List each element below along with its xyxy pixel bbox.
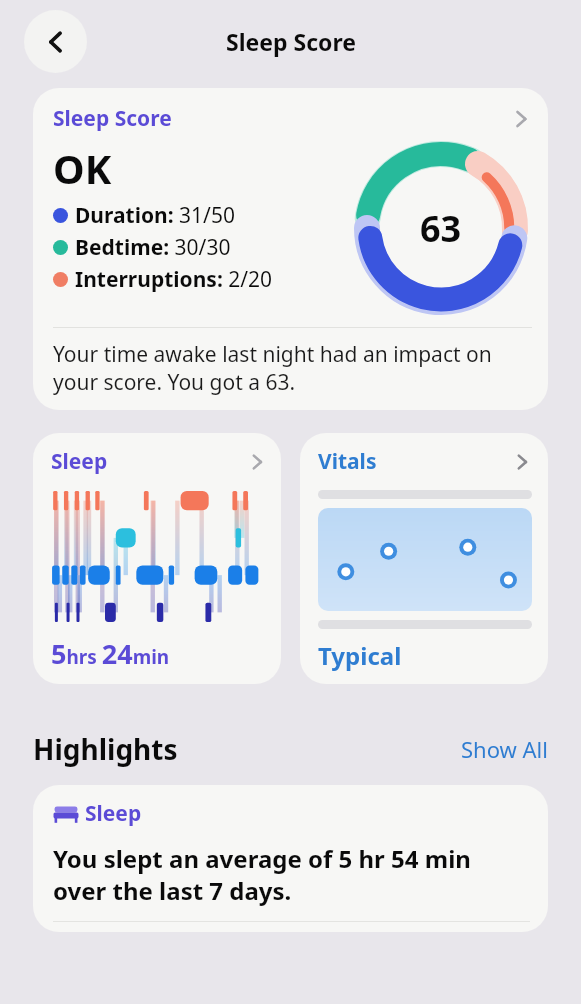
staticText: You slept an average of 5 hr 54 min over… xyxy=(53,842,530,907)
staticText: 5hrs 24min xyxy=(51,635,170,672)
staticText: Typical xyxy=(318,639,402,672)
staticText: Duration: 31/50 xyxy=(75,201,235,230)
button[interactable]: Vitals xyxy=(300,433,548,684)
button[interactable]: Back xyxy=(24,10,87,73)
staticText: OK xyxy=(53,141,112,195)
staticText: Show All xyxy=(461,734,548,764)
staticText: 63 xyxy=(420,204,462,253)
staticText: Sleep xyxy=(85,799,142,828)
staticText: Highlights xyxy=(33,730,178,768)
button[interactable]: Sleep xyxy=(33,785,548,932)
staticText: Sleep Score xyxy=(226,26,356,57)
staticText: Interruptions: 2/20 xyxy=(75,265,273,294)
staticText: Your time awake last night had an impact… xyxy=(53,340,532,396)
staticText: Sleep xyxy=(51,447,108,476)
button[interactable]: Show All xyxy=(461,734,548,764)
staticText: Vitals xyxy=(318,447,377,476)
button[interactable]: Sleep xyxy=(33,433,281,684)
staticText: Sleep Score xyxy=(53,104,172,133)
button[interactable]: Sleep Score xyxy=(33,88,548,410)
staticText: Bedtime: 30/30 xyxy=(75,233,231,262)
